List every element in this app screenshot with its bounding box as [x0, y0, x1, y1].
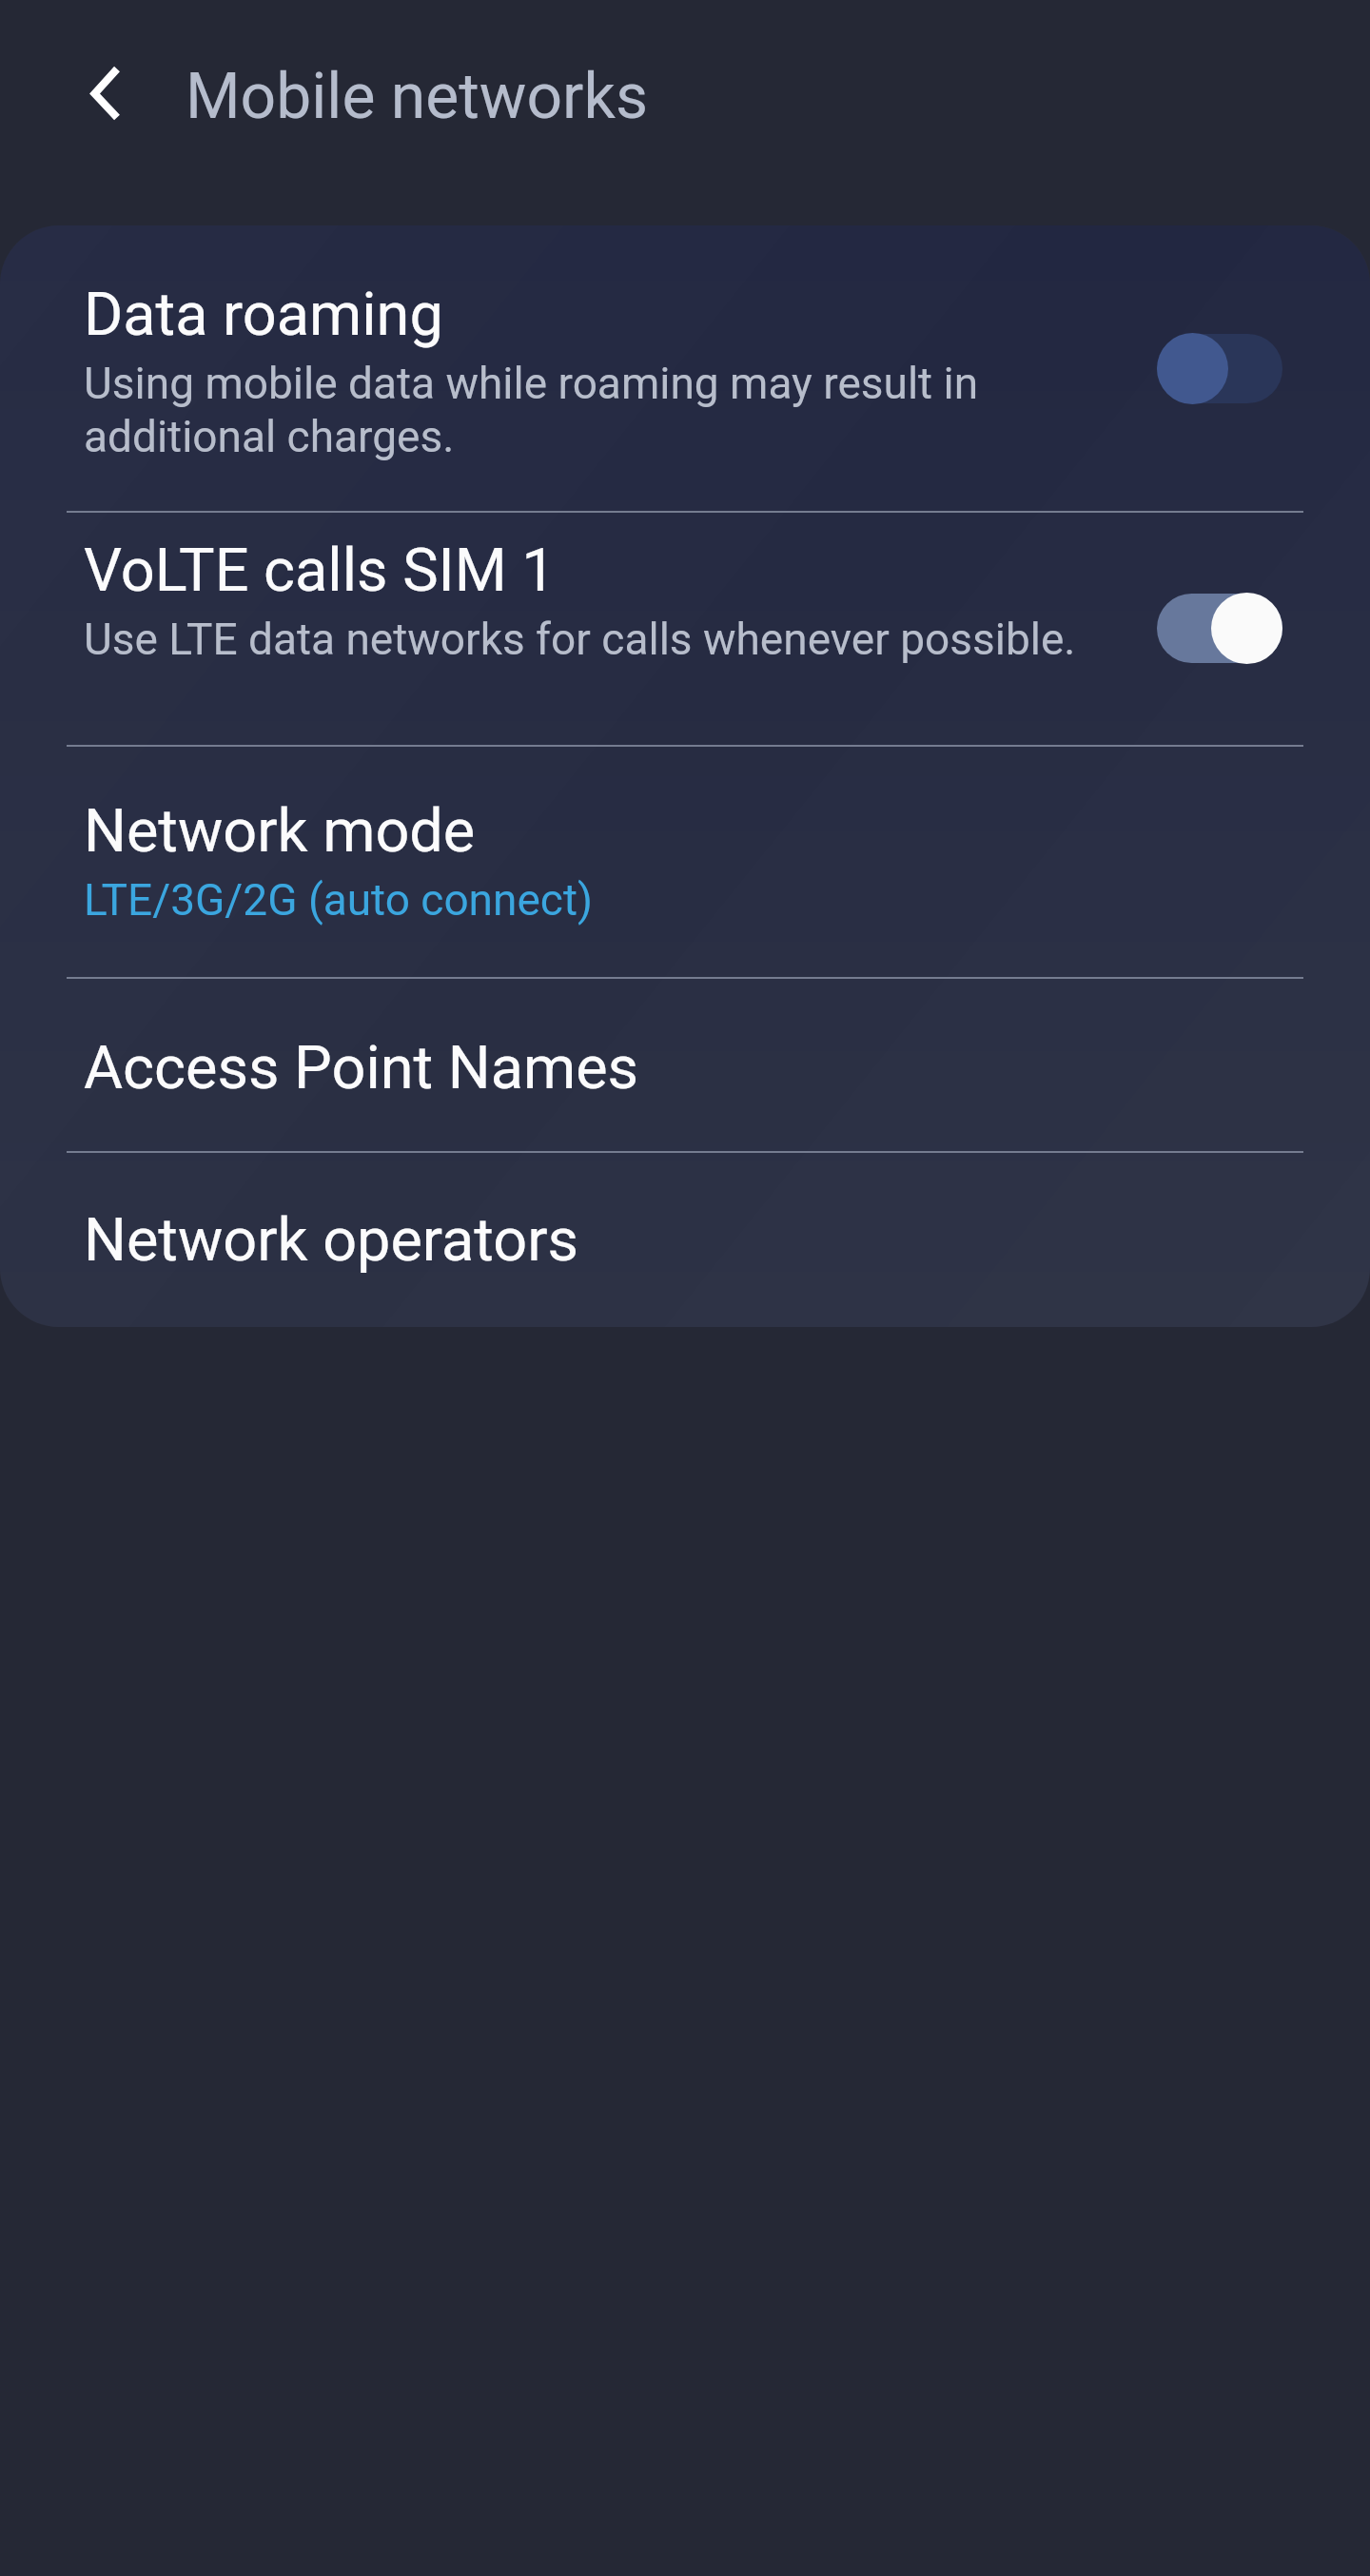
button[interactable]: Switch, off [1157, 333, 1282, 404]
staticText: LTE/3G/2G (auto connect) [84, 874, 593, 926]
button[interactable]: Switch, on [1157, 593, 1282, 664]
staticText: VoLTE calls SIM 1 [84, 536, 556, 606]
button[interactable]: Network operators [0, 1152, 1370, 1327]
staticText: Network operators [84, 1205, 579, 1276]
staticText: Data roaming [84, 280, 443, 350]
staticText: Access Point Names [84, 1033, 639, 1103]
button[interactable]: Data roaming [0, 225, 1370, 512]
staticText: Use LTE data networks for calls whenever… [84, 614, 1076, 665]
staticText: Network mode [84, 796, 476, 867]
button[interactable]: Navigate up [40, 40, 148, 148]
button[interactable]: Access Point Names [0, 978, 1370, 1152]
button[interactable]: VoLTE calls SIM 1 [0, 512, 1370, 746]
button[interactable]: Network mode [0, 746, 1370, 978]
staticText: Mobile networks [186, 60, 648, 133]
staticText: Using mobile data while roaming may resu… [84, 358, 979, 463]
